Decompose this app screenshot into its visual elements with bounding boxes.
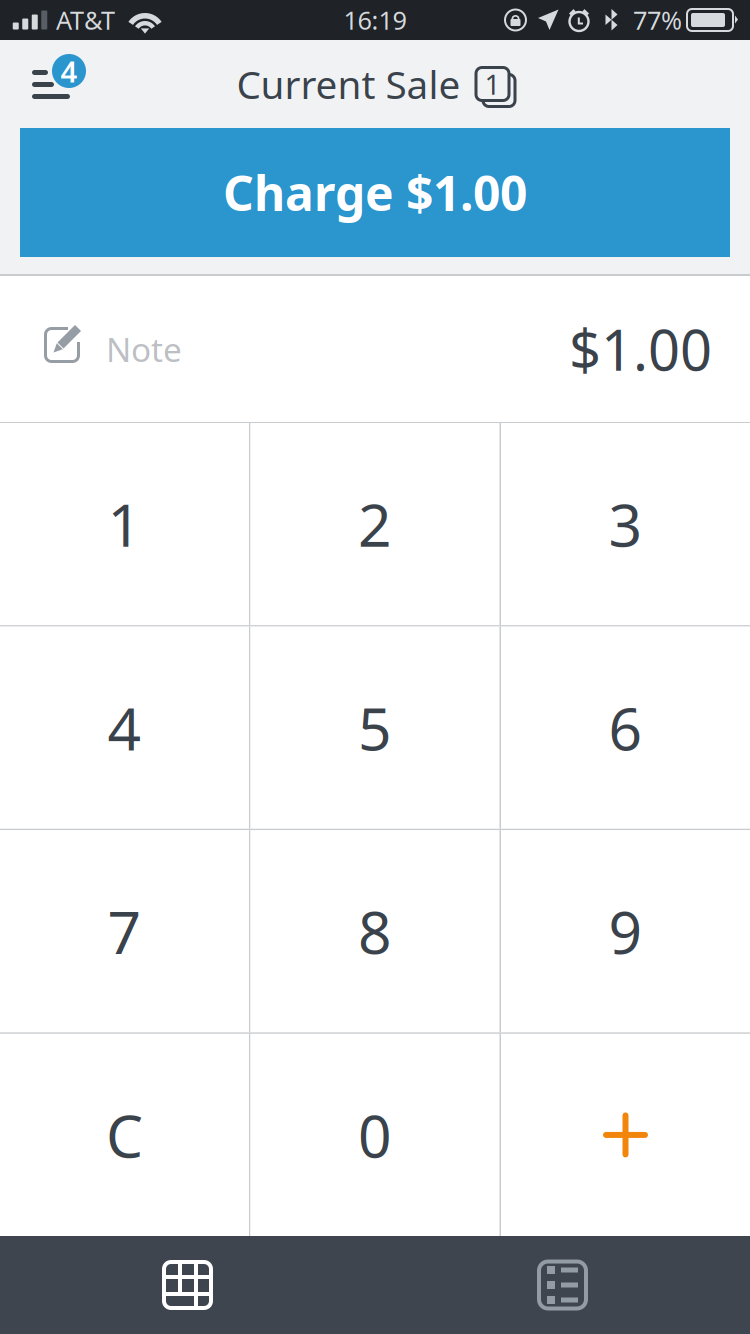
button[interactable]: 5 [250, 627, 499, 829]
staticText: 6 [608, 689, 642, 767]
staticText: 7 [107, 892, 141, 970]
staticText: 1 [107, 485, 141, 563]
button[interactable]: 3 [501, 423, 750, 625]
staticText: Current Sale [236, 58, 460, 110]
button[interactable]: C [0, 1034, 249, 1236]
staticText: 4 [60, 51, 77, 90]
staticText: 0 [358, 1096, 392, 1174]
button[interactable]: 7 [0, 830, 249, 1032]
staticText: 5 [358, 689, 392, 767]
button[interactable]: 4 [0, 627, 249, 829]
button[interactable]: Charge $1.00 [0, 128, 750, 257]
staticText: 1 [484, 65, 500, 103]
staticText: 77% [633, 3, 682, 37]
button[interactable]: 9 [501, 830, 750, 1032]
staticText: Note [106, 327, 182, 371]
button[interactable]: Menu [18, 59, 90, 109]
button[interactable]: 1 [0, 423, 249, 625]
staticText: C [106, 1096, 143, 1174]
staticText: Charge $1.00 [223, 161, 527, 224]
button[interactable]: 2 [250, 423, 499, 625]
staticText: 3 [608, 485, 642, 563]
button[interactable]: 0 [250, 1034, 499, 1236]
button[interactable]: Note [40, 326, 182, 372]
button[interactable]: Keypad [0, 1236, 375, 1334]
button[interactable]: Add [501, 1034, 750, 1236]
staticText: AT&T [56, 3, 115, 37]
button[interactable]: 8 [250, 830, 499, 1032]
staticText: 9 [608, 892, 642, 970]
staticText: 2 [358, 485, 392, 563]
staticText: 8 [358, 892, 392, 970]
button[interactable]: 6 [501, 627, 750, 829]
staticText: $1.00 [569, 312, 712, 386]
staticText: 16:19 [343, 3, 406, 37]
button[interactable]: Items [375, 1236, 750, 1334]
staticText: 4 [107, 689, 141, 767]
